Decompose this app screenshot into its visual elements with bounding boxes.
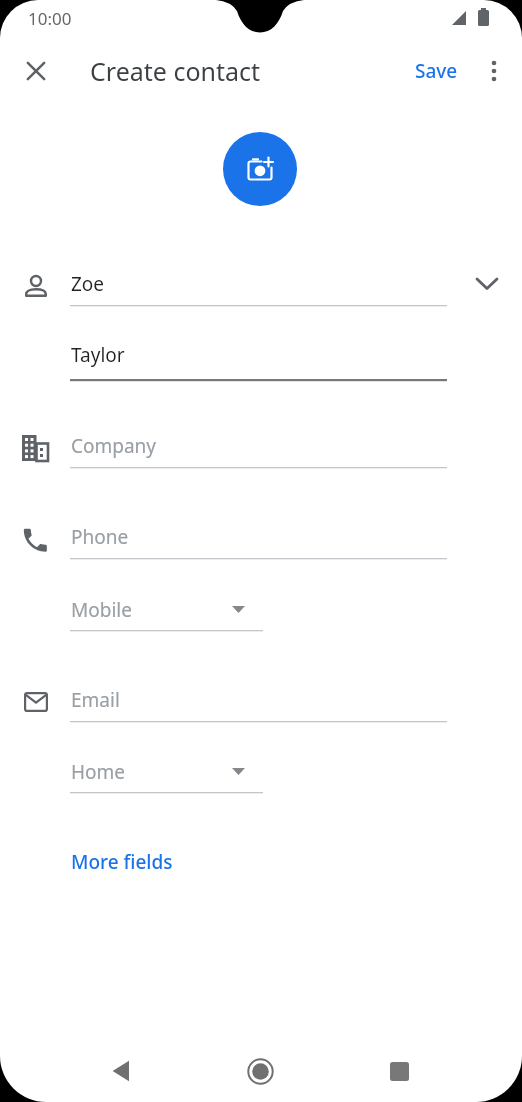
button[interactable] <box>97 1047 145 1095</box>
staticText: Mobile <box>71 597 132 623</box>
button[interactable] <box>0 675 522 727</box>
button[interactable] <box>0 512 522 564</box>
button[interactable] <box>60 747 270 797</box>
staticText: Create contact <box>90 54 261 88</box>
staticText: Zoe <box>71 271 105 297</box>
staticText: Save <box>415 58 458 84</box>
button[interactable] <box>60 585 270 635</box>
staticText: Email <box>71 687 120 713</box>
button[interactable] <box>223 132 297 206</box>
button[interactable] <box>474 51 514 91</box>
staticText: More fields <box>71 849 173 875</box>
button[interactable] <box>0 330 522 382</box>
staticText: Home <box>71 759 126 785</box>
button[interactable] <box>375 1047 423 1095</box>
button[interactable] <box>0 421 522 473</box>
button[interactable]: Save <box>405 51 467 91</box>
button[interactable] <box>467 264 507 304</box>
button[interactable] <box>16 51 56 91</box>
button[interactable] <box>0 258 522 310</box>
button[interactable] <box>236 1047 284 1095</box>
staticText: Company <box>71 433 157 459</box>
staticText: Taylor <box>71 342 125 368</box>
staticText: Phone <box>71 524 129 550</box>
staticText: 10:00 <box>28 7 72 30</box>
button[interactable]: More fields <box>55 840 157 884</box>
